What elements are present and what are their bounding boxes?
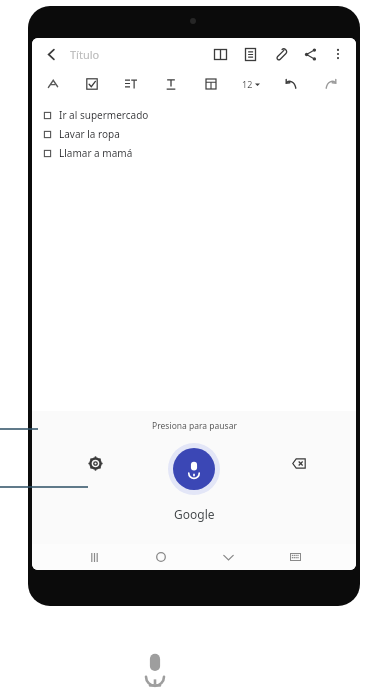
- button[interactable]: Redo: [320, 73, 342, 95]
- staticText: Título: [70, 47, 100, 62]
- button[interactable]: Checklist: [81, 73, 103, 95]
- staticText: 12: [242, 78, 253, 90]
- button[interactable]: More options: [328, 44, 348, 64]
- button[interactable]: Undo: [280, 73, 302, 95]
- staticText: Ir al supermercado: [59, 108, 149, 122]
- button[interactable]: Paragraph: [120, 73, 142, 95]
- button[interactable]: Text style: [42, 73, 64, 95]
- button[interactable]: Backspace: [288, 452, 310, 474]
- button[interactable]: Home: [150, 546, 172, 568]
- button[interactable]: Ir al supermercado: [44, 108, 356, 122]
- staticText: Presiona para pausar: [152, 420, 237, 432]
- button[interactable]: List view: [240, 44, 260, 64]
- button[interactable]: Text format: [160, 73, 182, 95]
- button[interactable]: Settings: [84, 452, 106, 474]
- staticText: Llamar a mamá: [59, 146, 133, 160]
- button[interactable]: Attach: [270, 44, 290, 64]
- button[interactable]: Share: [300, 44, 320, 64]
- button[interactable]: Table: [200, 73, 222, 95]
- button[interactable]: Keyboard layout: [284, 546, 306, 568]
- staticText: Google: [174, 506, 215, 522]
- button[interactable]: Microphone: [173, 448, 215, 490]
- button[interactable]: Llamar a mamá: [44, 146, 356, 160]
- staticText: Lavar la ropa: [59, 127, 120, 141]
- button[interactable]: Hide keyboard: [217, 546, 239, 568]
- button[interactable]: Reading view: [210, 44, 230, 64]
- button[interactable]: 12: [240, 78, 262, 90]
- button[interactable]: Lavar la ropa: [44, 127, 356, 141]
- button[interactable]: Back: [40, 43, 62, 65]
- button[interactable]: Recents: [83, 546, 105, 568]
